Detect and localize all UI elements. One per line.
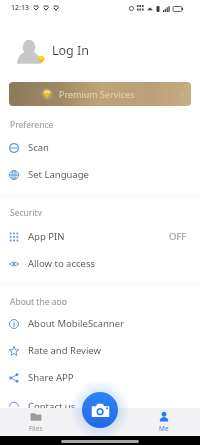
staticText: OFF: [169, 230, 187, 243]
button[interactable]: Allow to access: [0, 250, 200, 277]
button[interactable]: Files: [16, 408, 56, 436]
button[interactable]: Scan: [0, 134, 200, 161]
staticText: Rate and Review: [28, 344, 101, 357]
button[interactable]: Log In: [0, 16, 200, 72]
staticText: Me: [159, 424, 169, 433]
button[interactable]: About MobileScanner: [0, 310, 200, 337]
button[interactable]: Rate and Review: [0, 337, 200, 364]
button[interactable]: Premium Services: [9, 82, 191, 106]
button[interactable]: Share APP: [0, 364, 200, 391]
staticText: Allow to access: [28, 257, 96, 270]
staticText: Files: [29, 424, 43, 433]
staticText: App PIN: [28, 230, 65, 243]
staticText: Log In: [52, 42, 90, 59]
staticText: 12:13: [11, 3, 29, 13]
staticText: Scan: [28, 141, 49, 154]
staticText: Set Language: [28, 168, 89, 181]
staticText: Share APP: [28, 371, 74, 384]
staticText: About the app: [10, 296, 67, 305]
staticText: About MobileScanner: [28, 317, 125, 330]
button[interactable]: Set Language: [0, 161, 200, 188]
staticText: Premium Services: [59, 88, 135, 100]
staticText: Contact us: [28, 400, 76, 408]
button[interactable]: App PIN: [0, 223, 200, 250]
button[interactable]: Me: [144, 408, 184, 436]
staticText: Preference: [10, 119, 54, 128]
button[interactable]: Scan with camera: [82, 392, 118, 428]
button[interactable]: Contact us: [0, 400, 200, 408]
staticText: Security: [10, 207, 42, 216]
